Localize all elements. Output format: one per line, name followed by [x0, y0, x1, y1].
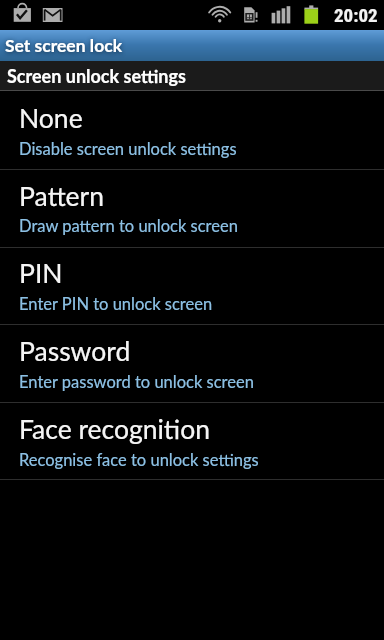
button[interactable]: None — [0, 91, 384, 170]
staticText: Disable screen unlock settings — [19, 139, 237, 159]
button[interactable]: Face recognition — [0, 402, 384, 480]
staticText: Recognise face to unlock settings — [19, 450, 259, 470]
staticText: Face recognition — [19, 413, 211, 445]
staticText: Enter PIN to unlock screen — [19, 294, 213, 314]
staticText: 20:02 — [334, 4, 378, 26]
staticText: Password — [19, 335, 131, 367]
button[interactable]: Pattern — [0, 170, 384, 248]
staticText: Pattern — [19, 180, 104, 212]
staticText: Draw pattern to unlock screen — [19, 216, 238, 236]
staticText: None — [19, 102, 83, 134]
staticText: PIN — [19, 257, 63, 289]
button[interactable]: Password — [0, 325, 384, 403]
button[interactable]: PIN — [0, 248, 384, 325]
staticText: Enter password to unlock screen — [19, 372, 254, 392]
staticText: Screen unlock settings — [7, 65, 186, 87]
staticText: Set screen lock — [5, 35, 122, 56]
